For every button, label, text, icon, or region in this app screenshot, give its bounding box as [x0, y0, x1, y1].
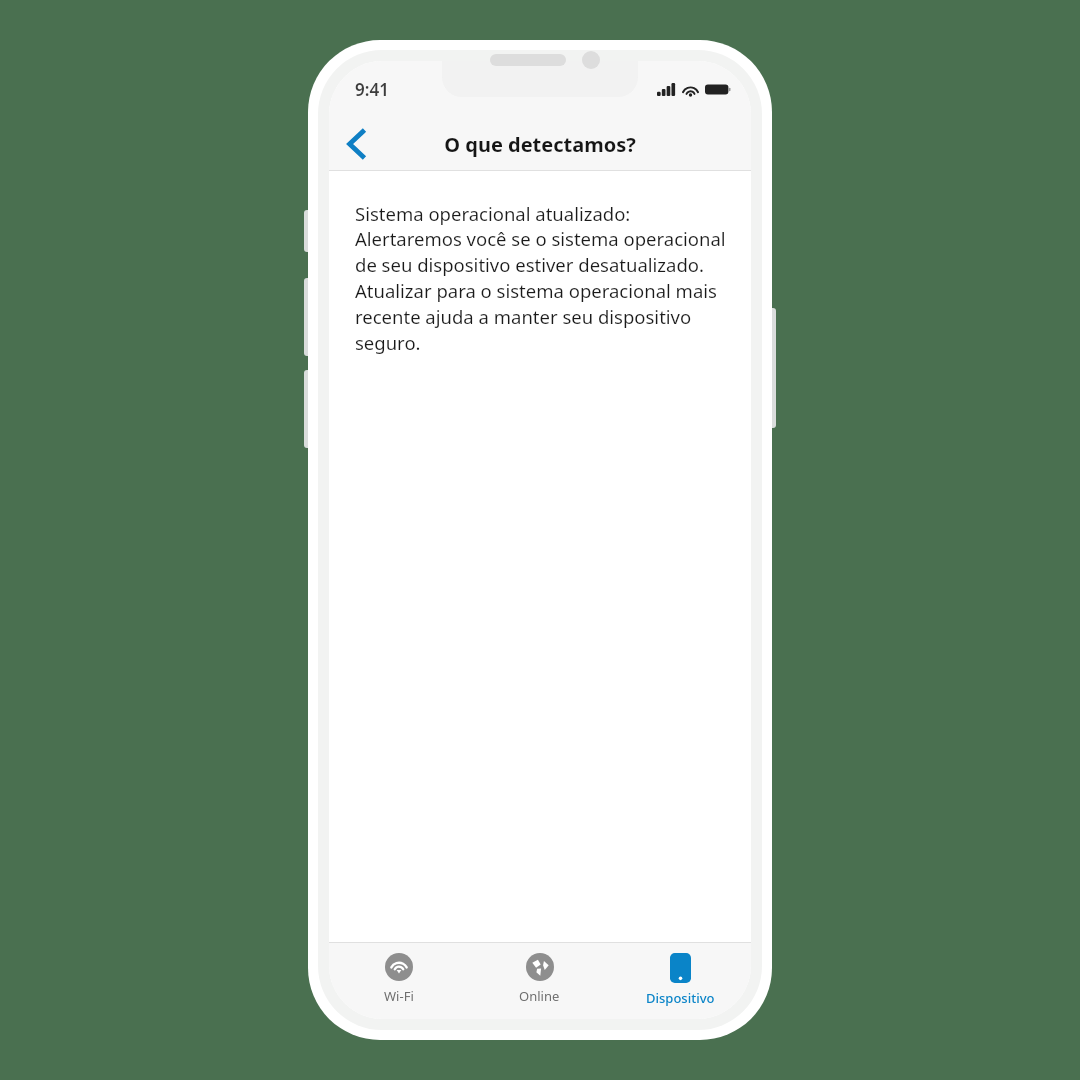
button[interactable]: Online [469, 943, 610, 1019]
staticText: Wi-Fi [384, 987, 414, 1005]
button[interactable]: Wi-Fi [329, 943, 469, 1019]
staticText: Dispositivo [646, 989, 715, 1007]
staticText: O que detectamos? [444, 131, 636, 158]
staticText: Sistema operacional atualizado: Alertare… [355, 201, 731, 356]
staticText: Online [519, 987, 560, 1005]
button[interactable]: Dispositivo [610, 943, 751, 1019]
button[interactable]: Voltar [329, 117, 383, 171]
staticText: 9:41 [355, 78, 389, 101]
